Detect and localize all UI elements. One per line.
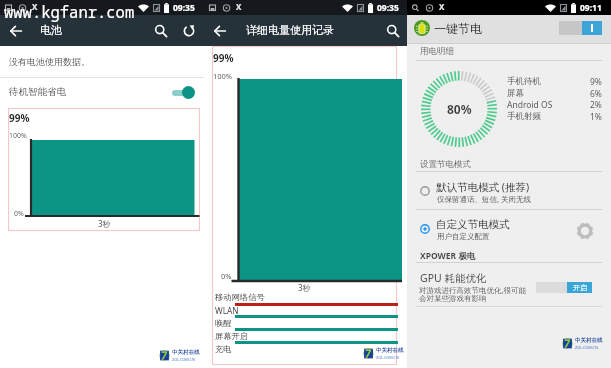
staticText: 09:35 [377,2,399,14]
staticText: 80% [447,101,472,117]
staticText: 中关村在线 [172,349,200,356]
staticText: 移动网络信号 [215,292,265,302]
staticText: 中关村在线 [376,347,404,354]
staticText: 设置节电模式 [420,159,471,170]
staticText: 中关村在线 [575,337,603,344]
staticText: 自定义节电模式 [436,218,510,231]
staticText: X [439,1,445,12]
button[interactable]: Search [148,15,174,46]
button[interactable]: 待机智能省电 [0,78,204,106]
staticText: 手机待机 [507,76,541,87]
button[interactable]: Back [207,15,233,46]
staticText: 电池 [40,23,62,37]
staticText: ZOL.COM.CN [376,355,399,360]
staticText: X [236,1,242,12]
staticText: www.kgfanr.com [4,1,135,22]
button[interactable]: Power toggle [559,21,602,35]
staticText: 100% [213,71,233,81]
button[interactable]: 自定义节电模式 [407,218,611,247]
staticText: 会对某些游戏有影响 [419,294,487,303]
staticText: 没有电池使用数据。 [9,56,90,67]
button[interactable]: GPU 耗能优化 [407,268,611,306]
staticText: 屏幕开启 [215,331,249,341]
staticText: 屏幕 [507,88,524,99]
staticText: 开启 [573,283,587,292]
staticText: 详细电量使用记录 [246,23,334,37]
staticText: 默认节电模式 (推荐) [436,180,530,194]
staticText: 一键节电 [434,21,482,36]
staticText: 09:35 [173,2,195,14]
staticText: 2% [590,99,602,111]
staticText: 1% [590,111,602,123]
staticText: 仅保留通话、短信, 关闭无线 [437,194,531,204]
button[interactable]: Back [3,15,29,46]
button[interactable]: Search [380,15,406,46]
staticText: GPU 耗能优化 [420,271,487,285]
staticText: XPOWER 极电 [420,250,476,262]
staticText: 用户自定义配置 [437,232,490,241]
staticText: 6% [590,88,602,100]
staticText: Android OS [507,99,553,111]
staticText: 99% [213,51,234,65]
staticText: ZOL.COM.CN [575,345,598,350]
staticText: 3秒 [298,282,311,293]
button[interactable]: Refresh [176,15,202,46]
staticText: 3秒 [98,218,111,229]
staticText: 0% [14,209,24,219]
staticText: 9% [590,76,602,88]
staticText: 充电 [215,344,232,354]
staticText: ZOL.COM.CN [172,357,195,362]
staticText: X [32,1,38,12]
staticText: 0% [221,271,232,281]
button[interactable]: 默认节电模式 (推荐) [407,180,611,209]
staticText: 唤醒 [215,318,232,328]
staticText: 对游戏进行高效节电优化,很可能 [419,285,527,295]
staticText: 用电明细 [420,46,454,57]
staticText: 09:11 [580,2,602,14]
staticText: 待机智能省电 [9,86,66,98]
staticText: 99% [9,111,30,125]
staticText: 手机射频 [507,111,541,122]
staticText: WLAN [215,305,239,316]
staticText: 100% [9,131,27,141]
